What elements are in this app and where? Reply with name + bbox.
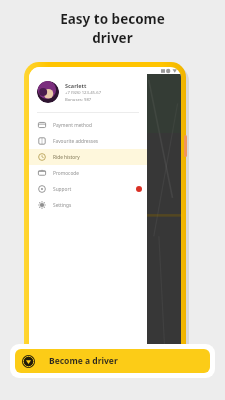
button[interactable]: Support [29, 181, 147, 197]
button[interactable]: Ride history [29, 149, 147, 165]
button[interactable]: Promocode [29, 165, 147, 181]
staticText: Payment method [53, 122, 92, 129]
staticText: Scarlett [65, 82, 87, 89]
button[interactable]: Become a driver [15, 349, 210, 373]
staticText: Become a driver [49, 355, 118, 367]
button[interactable]: Scarlett [29, 77, 147, 109]
staticText: Promocode [53, 170, 79, 177]
staticText: Support [53, 186, 72, 193]
button[interactable]: Payment method [29, 117, 147, 133]
staticText: driver [92, 29, 133, 47]
staticText: Easy to become [60, 10, 165, 28]
staticText: +7 (926) 123-45-67 [65, 90, 102, 96]
staticText: Bonuses: 987 [65, 97, 92, 103]
staticText: Settings [53, 202, 72, 209]
staticText: Favourite addresses [53, 138, 99, 145]
staticText: Ride history [53, 154, 80, 161]
button[interactable]: Favourite addresses [29, 133, 147, 149]
button[interactable]: Settings [29, 197, 147, 213]
